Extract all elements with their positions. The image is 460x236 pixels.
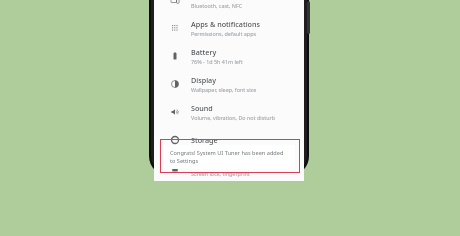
button[interactable]: Congrats! System UI Tuner has been added… (164, 145, 295, 169)
staticText: 76% - 1d 5h 41m left (191, 58, 243, 65)
staticText: Congrats! System UI Tuner has been added… (170, 149, 289, 165)
staticText: Bluetooth, cast, NFC (191, 2, 243, 9)
other: Sound (170, 107, 180, 117)
other: Security and location (170, 163, 180, 173)
staticText: Battery (191, 47, 217, 57)
other: Storage (170, 135, 180, 145)
button[interactable]: Apps and notifications (154, 14, 304, 42)
other: Battery (170, 51, 180, 61)
staticText: Wallpaper, sleep, font size (191, 86, 257, 93)
button[interactable]: Security and location (154, 154, 304, 181)
staticText: Screen lock, fingerprint (191, 170, 250, 177)
staticText: Volume, vibration, Do not disturb (191, 114, 276, 121)
staticText: Sound (191, 103, 213, 113)
button[interactable]: Connected devices (154, 0, 304, 14)
staticText: Security & location (191, 159, 256, 169)
other: Display (170, 79, 180, 89)
button[interactable]: Sound (154, 98, 304, 126)
other: Connected devices (170, 0, 180, 5)
button[interactable]: Battery (154, 42, 304, 70)
other: Apps and notifications (170, 23, 180, 33)
button[interactable]: Display (154, 70, 304, 98)
staticText: Display (191, 75, 216, 85)
staticText: Permissions, default apps (191, 30, 257, 37)
button[interactable]: Storage (154, 126, 304, 154)
staticText: Apps & notifications (191, 19, 260, 29)
staticText: Storage (191, 135, 218, 145)
